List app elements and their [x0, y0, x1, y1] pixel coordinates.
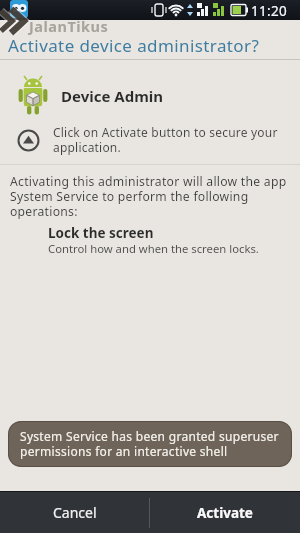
button[interactable]: Click on Activate button to secure your …	[0, 124, 300, 156]
button[interactable]: Device Admin	[0, 70, 300, 122]
staticText: Activate device administrator?	[8, 34, 260, 57]
staticText: JalanTikus	[29, 16, 109, 36]
button[interactable]: Activate	[150, 492, 300, 533]
button[interactable]: Cancel	[0, 492, 149, 533]
staticText: Lock the screen	[48, 224, 154, 242]
staticText: Control how and when the screen locks.	[48, 241, 259, 256]
staticText: Device Admin	[61, 86, 164, 106]
staticText: Activating this administrator will allow…	[10, 173, 287, 220]
staticText: 11:20	[251, 2, 288, 20]
staticText: Activate	[197, 504, 253, 522]
staticText: Cancel	[53, 503, 97, 522]
staticText: System Service has been granted superuse…	[20, 428, 279, 460]
staticText: Click on Activate button to secure your …	[53, 124, 278, 156]
